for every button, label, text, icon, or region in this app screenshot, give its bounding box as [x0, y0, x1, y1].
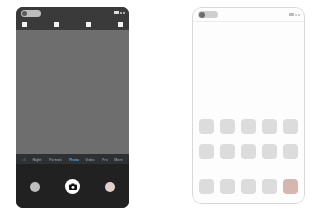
button[interactable]: App 4: [262, 119, 277, 134]
button[interactable]: App 5: [283, 144, 298, 159]
button[interactable]: Shutter: [65, 179, 80, 194]
button[interactable]: App 3: [241, 119, 256, 134]
staticText: Night: [32, 157, 42, 162]
button[interactable]: Video: [84, 157, 96, 162]
button[interactable]: App 3: [241, 179, 256, 194]
button[interactable]: ck: [21, 157, 27, 162]
staticText: ck: [22, 157, 26, 162]
button[interactable]: App 1: [199, 144, 214, 159]
button[interactable]: App 4: [262, 144, 277, 159]
button[interactable]: Switch camera: [105, 182, 115, 192]
staticText: Photo: [69, 157, 79, 162]
button[interactable]: App 5: [283, 179, 298, 194]
button[interactable]: App 4: [262, 179, 277, 194]
staticText: More: [114, 157, 123, 162]
button[interactable]: Portrait: [48, 157, 63, 162]
button[interactable]: App 2: [220, 144, 235, 159]
button[interactable]: App 5: [283, 119, 298, 134]
button[interactable]: More: [113, 157, 124, 162]
button[interactable]: Pro: [101, 157, 109, 162]
button[interactable]: Night: [31, 157, 43, 162]
button[interactable]: App 2: [220, 179, 235, 194]
button[interactable]: App 1: [199, 179, 214, 194]
staticText: Pro: [102, 157, 108, 162]
staticText: Video: [85, 157, 95, 162]
button[interactable]: Gallery: [30, 182, 40, 192]
button[interactable]: App 3: [241, 144, 256, 159]
button[interactable]: App 1: [199, 119, 214, 134]
staticText: Portrait: [49, 157, 62, 162]
button[interactable]: Photo: [68, 157, 80, 162]
button[interactable]: App 2: [220, 119, 235, 134]
